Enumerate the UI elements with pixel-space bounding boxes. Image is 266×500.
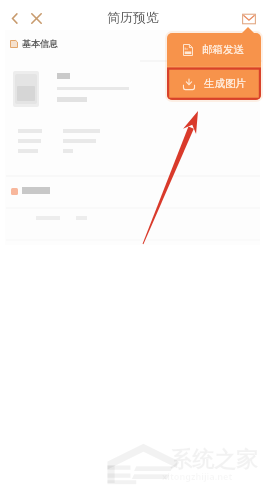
staticText: 基本信息 — [22, 38, 58, 49]
button[interactable]: Back — [5, 9, 23, 27]
staticText: 生成图片 — [204, 77, 246, 90]
staticText: 系统之家 — [170, 446, 258, 474]
button[interactable]: Close — [27, 9, 45, 27]
staticText: 简历预览 — [107, 9, 159, 25]
button[interactable]: Email — [240, 10, 258, 28]
staticText: xitongzhijia.net — [162, 470, 233, 482]
button[interactable]: 邮箱发送 — [167, 33, 261, 66]
button[interactable]: 生成图片 — [167, 67, 261, 100]
staticText: 邮箱发送 — [202, 43, 244, 56]
